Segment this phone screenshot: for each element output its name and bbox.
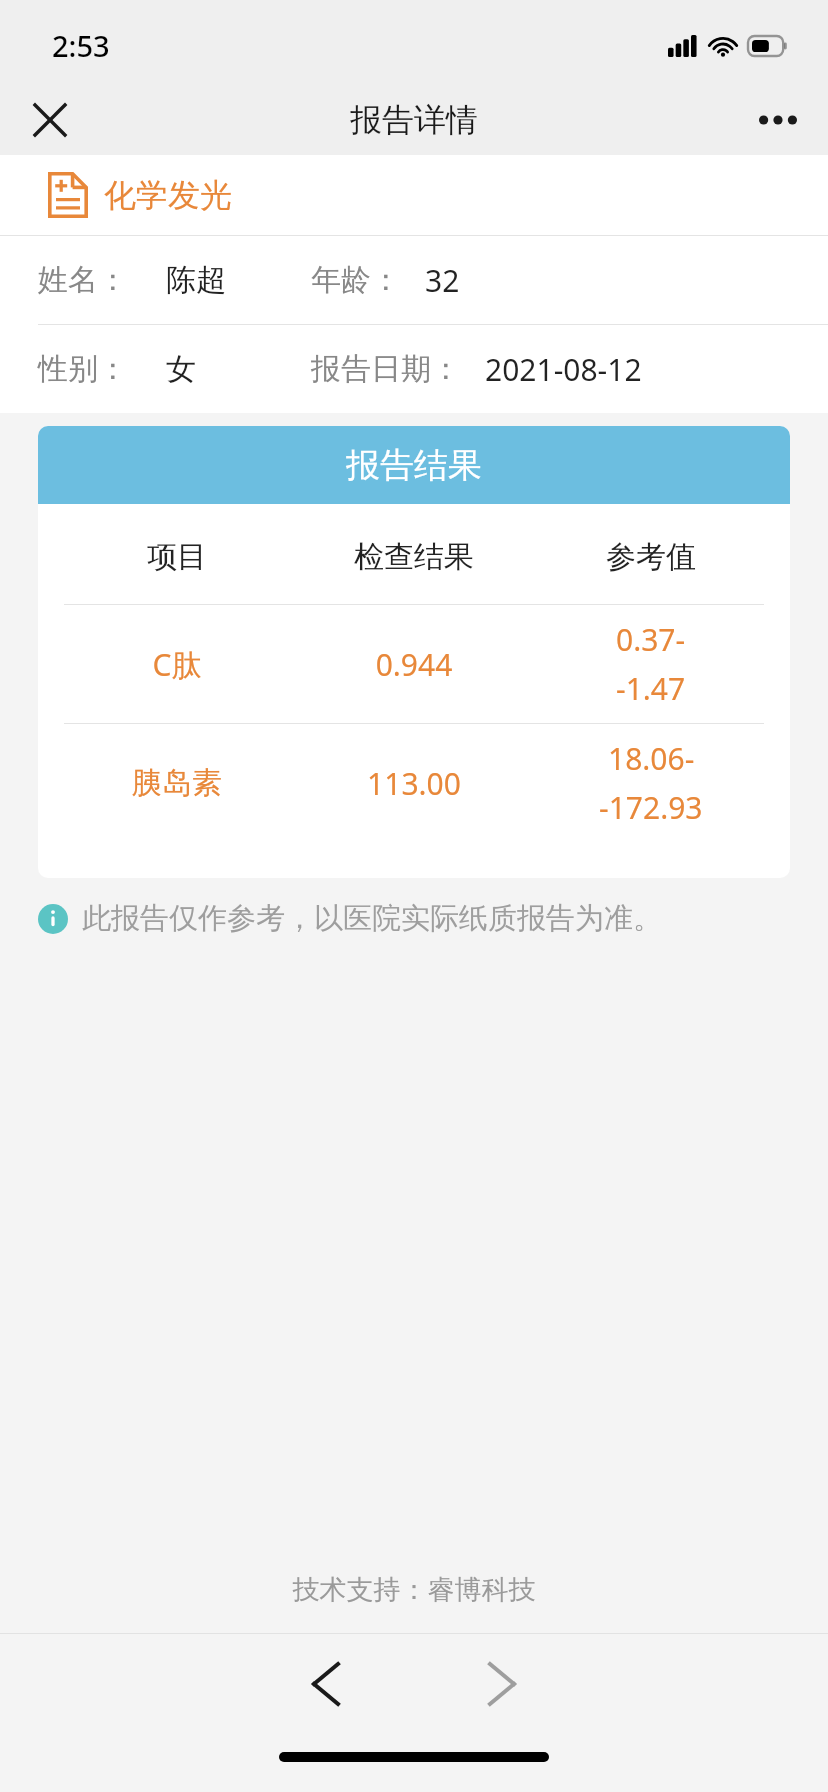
staticText: 陈超 — [166, 261, 226, 299]
staticText: 化学发光 — [104, 175, 232, 215]
staticText: 0.944 — [290, 644, 538, 685]
staticText: 0.37- — [616, 619, 686, 660]
staticText: 检查结果 — [290, 538, 538, 576]
staticText: 年龄： — [311, 261, 401, 299]
staticText: 报告详情 — [350, 100, 478, 140]
staticText: 性别： — [38, 350, 128, 388]
staticText: 胰岛素 — [64, 764, 290, 802]
button[interactable]: Close — [14, 85, 86, 155]
button[interactable]: C肽 — [38, 605, 790, 723]
staticText: 女 — [166, 350, 196, 388]
button[interactable]: Back — [282, 1640, 370, 1728]
staticText: 18.06- — [608, 738, 695, 779]
staticText: C肽 — [64, 644, 290, 685]
staticText: 技术支持：睿博科技 — [0, 1573, 828, 1607]
staticText: 报告结果 — [346, 444, 482, 487]
staticText: -172.93 — [599, 787, 703, 828]
staticText: 2:53 — [52, 26, 110, 65]
staticText: 32 — [425, 260, 460, 301]
button[interactable]: More options — [742, 85, 814, 155]
staticText: 2021-08-12 — [485, 349, 642, 390]
staticText: 报告日期： — [311, 350, 461, 388]
staticText: 项目 — [64, 538, 290, 576]
staticText: -1.47 — [616, 668, 686, 709]
button[interactable]: 胰岛素 — [38, 724, 790, 842]
staticText: 此报告仅作参考，以医院实际纸质报告为准。 — [82, 900, 662, 937]
button[interactable]: Forward — [458, 1640, 546, 1728]
staticText: 参考值 — [538, 538, 764, 576]
staticText: 姓名： — [38, 261, 128, 299]
staticText: 113.00 — [290, 763, 538, 804]
